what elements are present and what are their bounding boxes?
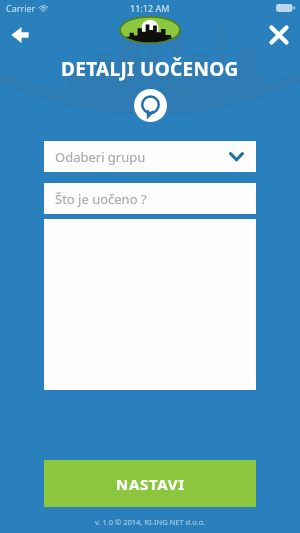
button[interactable]: Back: [4, 19, 36, 51]
button[interactable]: Što je uočeno ?: [44, 183, 256, 214]
button[interactable]: Odaberi grupu: [44, 141, 256, 172]
staticText: DETALJI UOČENOG: [61, 56, 239, 82]
staticText: Odaberi grupu: [55, 148, 146, 166]
button[interactable]: NASTAVI: [44, 460, 256, 507]
staticText: 11:12 AM: [130, 2, 170, 14]
button[interactable]: Close: [263, 19, 295, 51]
staticText: NASTAVI: [116, 474, 185, 494]
staticText: Carrier: [6, 2, 36, 14]
staticText: v. 1.0 © 2014, RI-ING NET d.o.o.: [95, 517, 206, 527]
staticText: Što je uočeno ?: [55, 190, 147, 208]
